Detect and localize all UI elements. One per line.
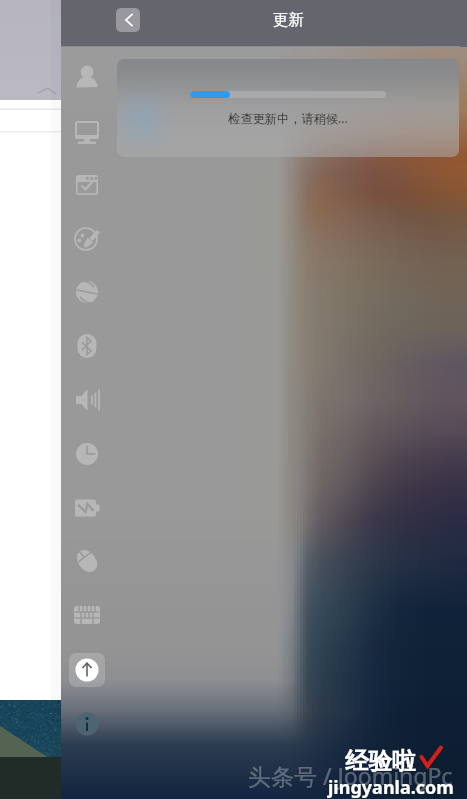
button[interactable]: info	[66, 703, 108, 745]
button[interactable]: mouse	[66, 540, 108, 582]
button[interactable]: keyboard	[66, 594, 108, 636]
button[interactable]: clock	[66, 433, 108, 475]
button[interactable]: globe	[66, 271, 108, 313]
staticText: 经验啦	[345, 746, 416, 776]
staticText: 头条号 / JoomingPc	[248, 760, 453, 791]
staticText: jingyanla.com	[328, 775, 454, 799]
button[interactable]: display	[66, 110, 108, 152]
button[interactable]: battery	[66, 487, 108, 529]
staticText: 更新	[273, 10, 304, 30]
button[interactable]: mission	[66, 164, 108, 206]
staticText: 检查更新中，请稍候...	[228, 110, 348, 127]
button[interactable]: palette	[66, 218, 108, 260]
button[interactable]: bluetooth	[66, 325, 108, 367]
button[interactable]: 检查更新中，请稍候...	[117, 59, 459, 157]
button[interactable]: person	[66, 56, 108, 98]
button[interactable]: sound	[66, 379, 108, 421]
button[interactable]: Back	[116, 8, 140, 32]
button[interactable]: update	[66, 649, 108, 691]
